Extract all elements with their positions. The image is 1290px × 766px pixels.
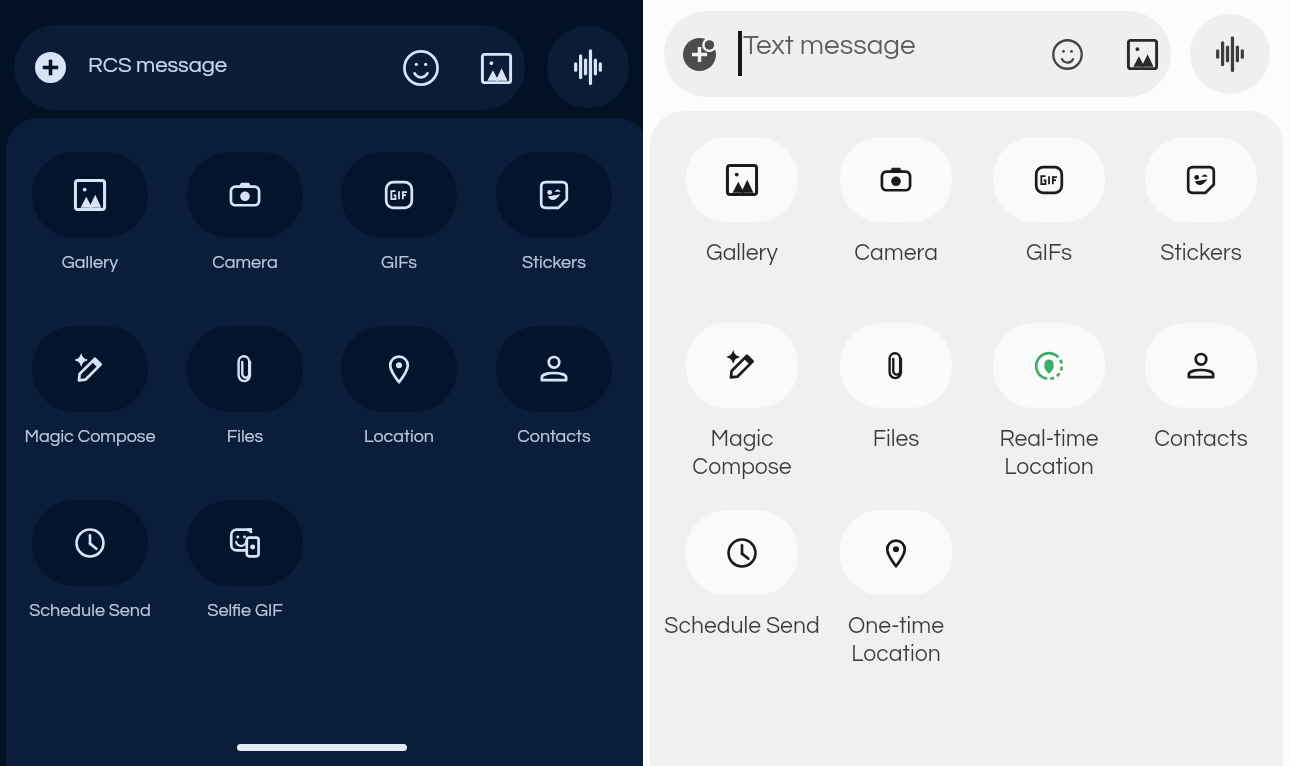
- staticText: Camera: [796, 241, 996, 265]
- button[interactable]: One-time Location: [796, 510, 996, 670]
- button[interactable]: GIFs: [299, 152, 499, 278]
- staticText: Selfie GIF: [145, 601, 345, 620]
- button[interactable]: Gallery: [0, 152, 190, 278]
- button[interactable]: Magic Compose: [0, 326, 190, 452]
- button[interactable]: Gallery: [1123, 35, 1161, 73]
- button[interactable]: Real-time Location: [949, 323, 1149, 483]
- button[interactable]: Add attachment: [676, 31, 722, 77]
- button[interactable]: Stickers: [454, 152, 654, 278]
- button[interactable]: Voice message: [1190, 14, 1270, 94]
- button[interactable]: Files: [796, 323, 996, 483]
- button[interactable]: Camera: [796, 137, 996, 297]
- staticText: GIFs: [299, 253, 499, 272]
- button[interactable]: Location: [299, 326, 499, 452]
- staticText: Magic Compose: [642, 427, 842, 479]
- button[interactable]: Gallery: [478, 50, 514, 86]
- staticText: Stickers: [454, 253, 654, 272]
- staticText: Stickers: [1101, 241, 1290, 265]
- staticText: Files: [145, 427, 345, 446]
- button[interactable]: Contacts: [1101, 323, 1290, 483]
- staticText: GIFs: [949, 241, 1149, 265]
- button[interactable]: Schedule Send: [642, 510, 842, 670]
- button[interactable]: Add attachment: [14, 25, 525, 110]
- button[interactable]: Contacts: [454, 326, 654, 452]
- staticText: Files: [796, 427, 996, 451]
- staticText: Magic Compose: [0, 427, 190, 446]
- button[interactable]: Emoji: [1048, 35, 1086, 73]
- button[interactable]: Schedule Send: [0, 500, 190, 626]
- button[interactable]: Add attachment: [35, 52, 66, 83]
- button[interactable]: Voice message: [547, 26, 629, 108]
- button[interactable]: Files: [145, 326, 345, 452]
- staticText: Gallery: [0, 253, 190, 272]
- button[interactable]: Magic Compose: [642, 323, 842, 483]
- button[interactable]: Add attachment: [664, 11, 1171, 97]
- staticText: Contacts: [454, 427, 654, 446]
- button[interactable]: GIFs: [949, 137, 1149, 297]
- staticText: Contacts: [1101, 427, 1290, 451]
- staticText: Gallery: [642, 241, 842, 265]
- staticText: Text message: [743, 31, 916, 60]
- staticText: One-time Location: [796, 614, 996, 666]
- button[interactable]: Selfie GIF: [145, 500, 345, 626]
- staticText: Location: [299, 427, 499, 446]
- staticText: Schedule Send: [642, 614, 842, 638]
- button[interactable]: Stickers: [1101, 137, 1290, 297]
- button[interactable]: Gallery: [642, 137, 842, 297]
- staticText: Camera: [145, 253, 345, 272]
- button[interactable]: Emoji: [403, 50, 439, 86]
- staticText: RCS message: [88, 54, 228, 77]
- staticText: Schedule Send: [0, 601, 190, 620]
- staticText: Real-time Location: [949, 427, 1149, 479]
- button[interactable]: Camera: [145, 152, 345, 278]
